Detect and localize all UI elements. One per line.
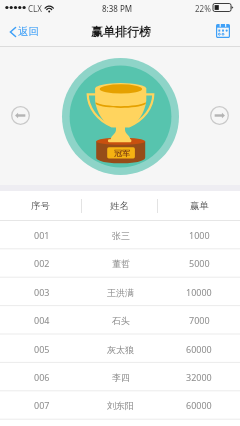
staticText: 冠军 <box>114 148 130 158</box>
staticText: 李四 <box>112 372 130 383</box>
button[interactable]: 007 <box>0 391 240 419</box>
staticText: 60000 <box>186 399 212 411</box>
button[interactable]: 001 <box>0 221 240 249</box>
staticText: 张三 <box>112 230 130 241</box>
staticText: 赢单排行榜 <box>91 24 151 39</box>
staticText: 10000 <box>186 286 212 298</box>
button[interactable]: 004 <box>0 306 240 334</box>
button[interactable]: Previous <box>9 104 31 126</box>
staticText: 002 <box>34 257 50 269</box>
button[interactable]: Calendar <box>214 22 232 40</box>
button[interactable]: 003 <box>0 278 240 306</box>
staticText: 1000 <box>189 229 210 241</box>
button[interactable]: 返回 <box>9 25 39 38</box>
staticText: CLX <box>28 3 42 14</box>
staticText: 石头 <box>112 315 130 326</box>
button[interactable]: Next <box>208 104 230 126</box>
staticText: 5000 <box>189 257 210 269</box>
staticText: 8:38 PM <box>102 3 133 14</box>
staticText: 赢单 <box>190 200 209 212</box>
staticText: 003 <box>34 286 50 298</box>
staticText: 序号 <box>31 200 50 212</box>
staticText: 004 <box>34 314 50 326</box>
staticText: 刘东阳 <box>107 400 134 411</box>
staticText: 005 <box>34 343 50 355</box>
button[interactable]: 006 <box>0 363 240 391</box>
staticText: 灰太狼 <box>107 344 134 355</box>
staticText: 006 <box>34 371 50 383</box>
staticText: 22% <box>195 3 211 14</box>
staticText: 007 <box>34 399 50 411</box>
staticText: 60000 <box>186 343 212 355</box>
staticText: 姓名 <box>110 200 129 212</box>
staticText: 返回 <box>18 25 39 38</box>
button[interactable]: 005 <box>0 335 240 363</box>
staticText: 7000 <box>189 314 210 326</box>
staticText: 董哲 <box>112 258 130 269</box>
staticText: 王洪满 <box>107 287 134 298</box>
staticText: 32000 <box>186 371 212 383</box>
button[interactable]: 002 <box>0 249 240 277</box>
staticText: 001 <box>34 229 50 241</box>
